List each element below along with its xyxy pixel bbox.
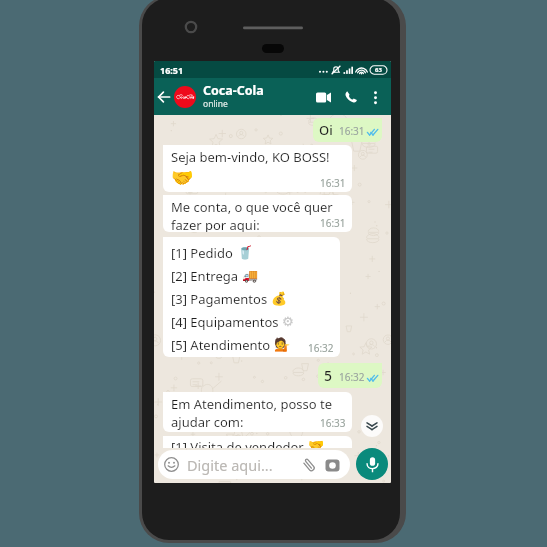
staticText: 16:51 — [160, 64, 184, 76]
staticText: 🤝 — [308, 438, 325, 448]
button[interactable]: Scroll to bottom — [361, 415, 383, 437]
staticText: online — [203, 98, 228, 110]
staticText: 16:32 — [339, 370, 365, 384]
button[interactable]: 5 — [318, 363, 382, 388]
button[interactable]: Seja bem-vindo, KO BOSS! — [163, 145, 352, 192]
button[interactable]: Record voice message — [356, 448, 388, 480]
staticText: 16:33 — [320, 416, 346, 430]
staticText: [2] Entrega — [171, 267, 242, 285]
staticText: [4] Equipamentos — [171, 313, 282, 331]
button[interactable]: Back — [155, 88, 173, 106]
button[interactable]: Call — [337, 83, 365, 111]
staticText: 16:32 — [308, 341, 334, 355]
staticText: ajudar com: — [171, 413, 244, 431]
staticText: 5 — [324, 366, 333, 385]
staticText: Oi — [319, 121, 333, 139]
staticText: fazer por aqui: — [171, 216, 260, 232]
staticText: 16:31 — [339, 124, 365, 138]
staticText: 🚚 — [242, 268, 259, 283]
button[interactable]: Video call — [309, 83, 337, 111]
staticText: ⚙️ — [282, 314, 294, 329]
button[interactable]: [1] Pedido — [163, 237, 340, 357]
staticText: Coca-Cola — [203, 82, 264, 99]
staticText: Em Atendimento, posso te — [171, 395, 333, 413]
staticText: 16:31 — [320, 216, 346, 230]
staticText: 💰 — [271, 291, 288, 306]
staticText: 💁 — [274, 337, 291, 352]
button[interactable]: Attach file — [299, 454, 321, 476]
staticText: [3] Pagamentos — [171, 290, 271, 308]
staticText: [1] Visita de vendedor — [171, 438, 308, 448]
staticText: 63 — [375, 66, 382, 74]
staticText: 16:31 — [320, 176, 346, 190]
button[interactable]: Camera — [321, 454, 343, 476]
button[interactable]: Em Atendimento, posso te — [163, 392, 352, 432]
staticText: Me conta, o que você quer — [171, 198, 333, 216]
button[interactable]: More options — [365, 87, 385, 107]
staticText: 🥤 — [237, 245, 254, 260]
button[interactable]: Oi — [313, 118, 382, 142]
button[interactable]: Me conta, o que você quer — [163, 195, 352, 232]
staticText: Seja bem-vindo, KO BOSS! — [171, 148, 330, 166]
staticText: [5] Atendimento — [171, 336, 274, 354]
staticText: [1] Pedido — [171, 244, 237, 262]
button[interactable]: [1] Visita de vendedor — [163, 436, 352, 448]
staticText: 🤝 — [171, 167, 194, 188]
staticText: Digite aqui... — [187, 455, 299, 475]
button[interactable]: Digite aqui... — [158, 450, 350, 479]
